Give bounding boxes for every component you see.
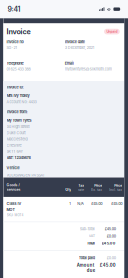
staticText: Total paid: [79, 256, 95, 260]
staticText: due: [87, 268, 95, 273]
staticText: £0.00: [107, 234, 116, 238]
staticText: SG-21: [6, 45, 17, 50]
staticText: Ex. tax: [91, 188, 102, 192]
staticText: Duke Court: [6, 131, 25, 135]
staticText: Class IV: [6, 201, 21, 206]
staticText: £45.00: [105, 227, 116, 231]
staticText: Account No: 4433: [6, 100, 36, 104]
staticText: Amount: [77, 263, 95, 268]
staticText: 3 December, 2021: [65, 45, 95, 50]
staticText: Vehicle: [6, 166, 19, 170]
staticText: 9:41: [7, 5, 20, 13]
staticText: SK11 6AY: [6, 149, 23, 154]
staticText: Price: [114, 183, 122, 188]
staticText: £45.00: [91, 201, 102, 206]
staticText: £45.00: [111, 201, 122, 206]
staticText: VOLKSWAGEN PASSAT: [6, 173, 44, 177]
staticText: Unpaid: [106, 30, 117, 33]
staticText: Invoice: [6, 27, 30, 36]
staticText: rate: [78, 188, 84, 192]
staticText: Qty: [65, 187, 71, 192]
staticText: VAT: 12345678: [6, 155, 30, 160]
staticText: Telephone: [6, 61, 23, 66]
staticText: MOT: [6, 207, 14, 212]
staticText: Cheshire: [6, 143, 21, 147]
staticText: Mrs Ivy Tibley: [6, 93, 29, 98]
staticText: 01625 433 388: [6, 67, 30, 71]
staticText: Invoice date: [65, 40, 85, 44]
staticText: Email: [65, 61, 74, 66]
staticText: services: [6, 187, 20, 192]
staticText: Incl. tax: [109, 188, 122, 192]
staticText: Invoice from:: [6, 110, 27, 114]
staticText: Goods /: [6, 183, 19, 187]
staticText: Invoice to:: [6, 85, 23, 89]
staticText: 34 High Street: [6, 124, 29, 129]
staticText: Total: [87, 241, 95, 245]
staticText: 1: [69, 201, 71, 206]
staticText: My Town Tyres: [6, 118, 31, 123]
staticText: SKU: MOT4: [6, 213, 23, 217]
staticText: Macclesfield: [6, 137, 27, 141]
staticText: £0.00: [107, 256, 116, 260]
staticText: Tax: [78, 183, 84, 188]
staticText: £45.00: [100, 263, 116, 268]
staticText: VAT: [89, 234, 95, 238]
staticText: Price: [94, 183, 102, 188]
staticText: Invoice no: [6, 40, 23, 44]
staticText: mytowntyres@silkmoth.com: [65, 67, 112, 71]
staticText: Sub-total: [80, 227, 95, 231]
staticText: N/A: [77, 201, 84, 206]
button[interactable]: Unpaid: [104, 29, 120, 34]
staticText: £45.00: [102, 241, 116, 245]
